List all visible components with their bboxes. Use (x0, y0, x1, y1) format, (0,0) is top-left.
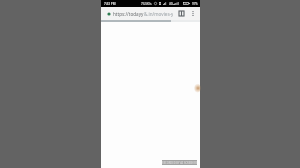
button[interactable]: More options (187, 7, 199, 20)
staticText: 4G (169, 2, 173, 6)
staticText: 73.5K/s (141, 2, 152, 6)
button[interactable]: https://todayy (101, 7, 179, 20)
button[interactable]: Switch tabs (175, 7, 187, 20)
staticText: RECORDED BY AZ SCREEN RECORDER (162, 161, 197, 165)
staticText: 97% (192, 2, 198, 6)
staticText: https://todayy (113, 11, 144, 17)
staticText: &.in/movies-year (144, 11, 173, 17)
staticText: 7:33 PM (104, 2, 116, 6)
